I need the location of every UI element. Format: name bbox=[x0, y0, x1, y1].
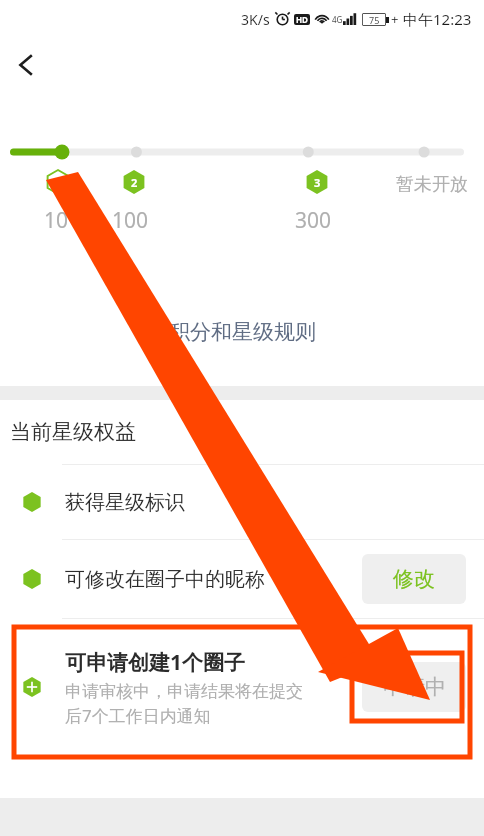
staticText: 300 bbox=[295, 206, 332, 235]
staticText: 中午12:23 bbox=[403, 9, 472, 29]
staticText: HD bbox=[296, 14, 308, 25]
button[interactable]: 申请中 bbox=[362, 662, 466, 712]
staticText: + bbox=[391, 10, 399, 28]
staticText: 可修改在圈子中的昵称 bbox=[65, 567, 265, 592]
staticText: 可申请创建1个圈子 bbox=[65, 648, 246, 677]
staticText: 2 bbox=[131, 175, 138, 190]
button[interactable]: 积分和星级规则 bbox=[0, 314, 484, 350]
button[interactable]: 可修改在圈子中的昵称 bbox=[0, 540, 484, 618]
button[interactable]: Back bbox=[0, 38, 54, 92]
staticText: 1 bbox=[55, 175, 62, 190]
staticText: 申请审核中，申请结果将在提交 后7个工作日内通知 bbox=[65, 681, 303, 727]
staticText: 4G bbox=[332, 14, 343, 25]
staticText: 3 bbox=[314, 175, 321, 190]
staticText: 申请中 bbox=[383, 674, 446, 700]
button[interactable]: 可申请创建1个圈子 bbox=[0, 619, 484, 755]
staticText: 3K/s bbox=[241, 10, 270, 29]
staticText: 75 bbox=[369, 14, 380, 26]
staticText: 暂未开放 bbox=[396, 173, 468, 196]
staticText: 当前星级权益 bbox=[10, 419, 136, 445]
staticText: 10 bbox=[44, 206, 69, 235]
button[interactable]: 修改 bbox=[362, 554, 466, 604]
staticText: 获得星级标识 bbox=[65, 490, 185, 515]
staticText: 100 bbox=[112, 206, 149, 235]
button[interactable]: 获得星级标识 bbox=[0, 465, 484, 539]
staticText: 积分和星级规则 bbox=[169, 319, 316, 345]
staticText: 修改 bbox=[393, 566, 435, 592]
